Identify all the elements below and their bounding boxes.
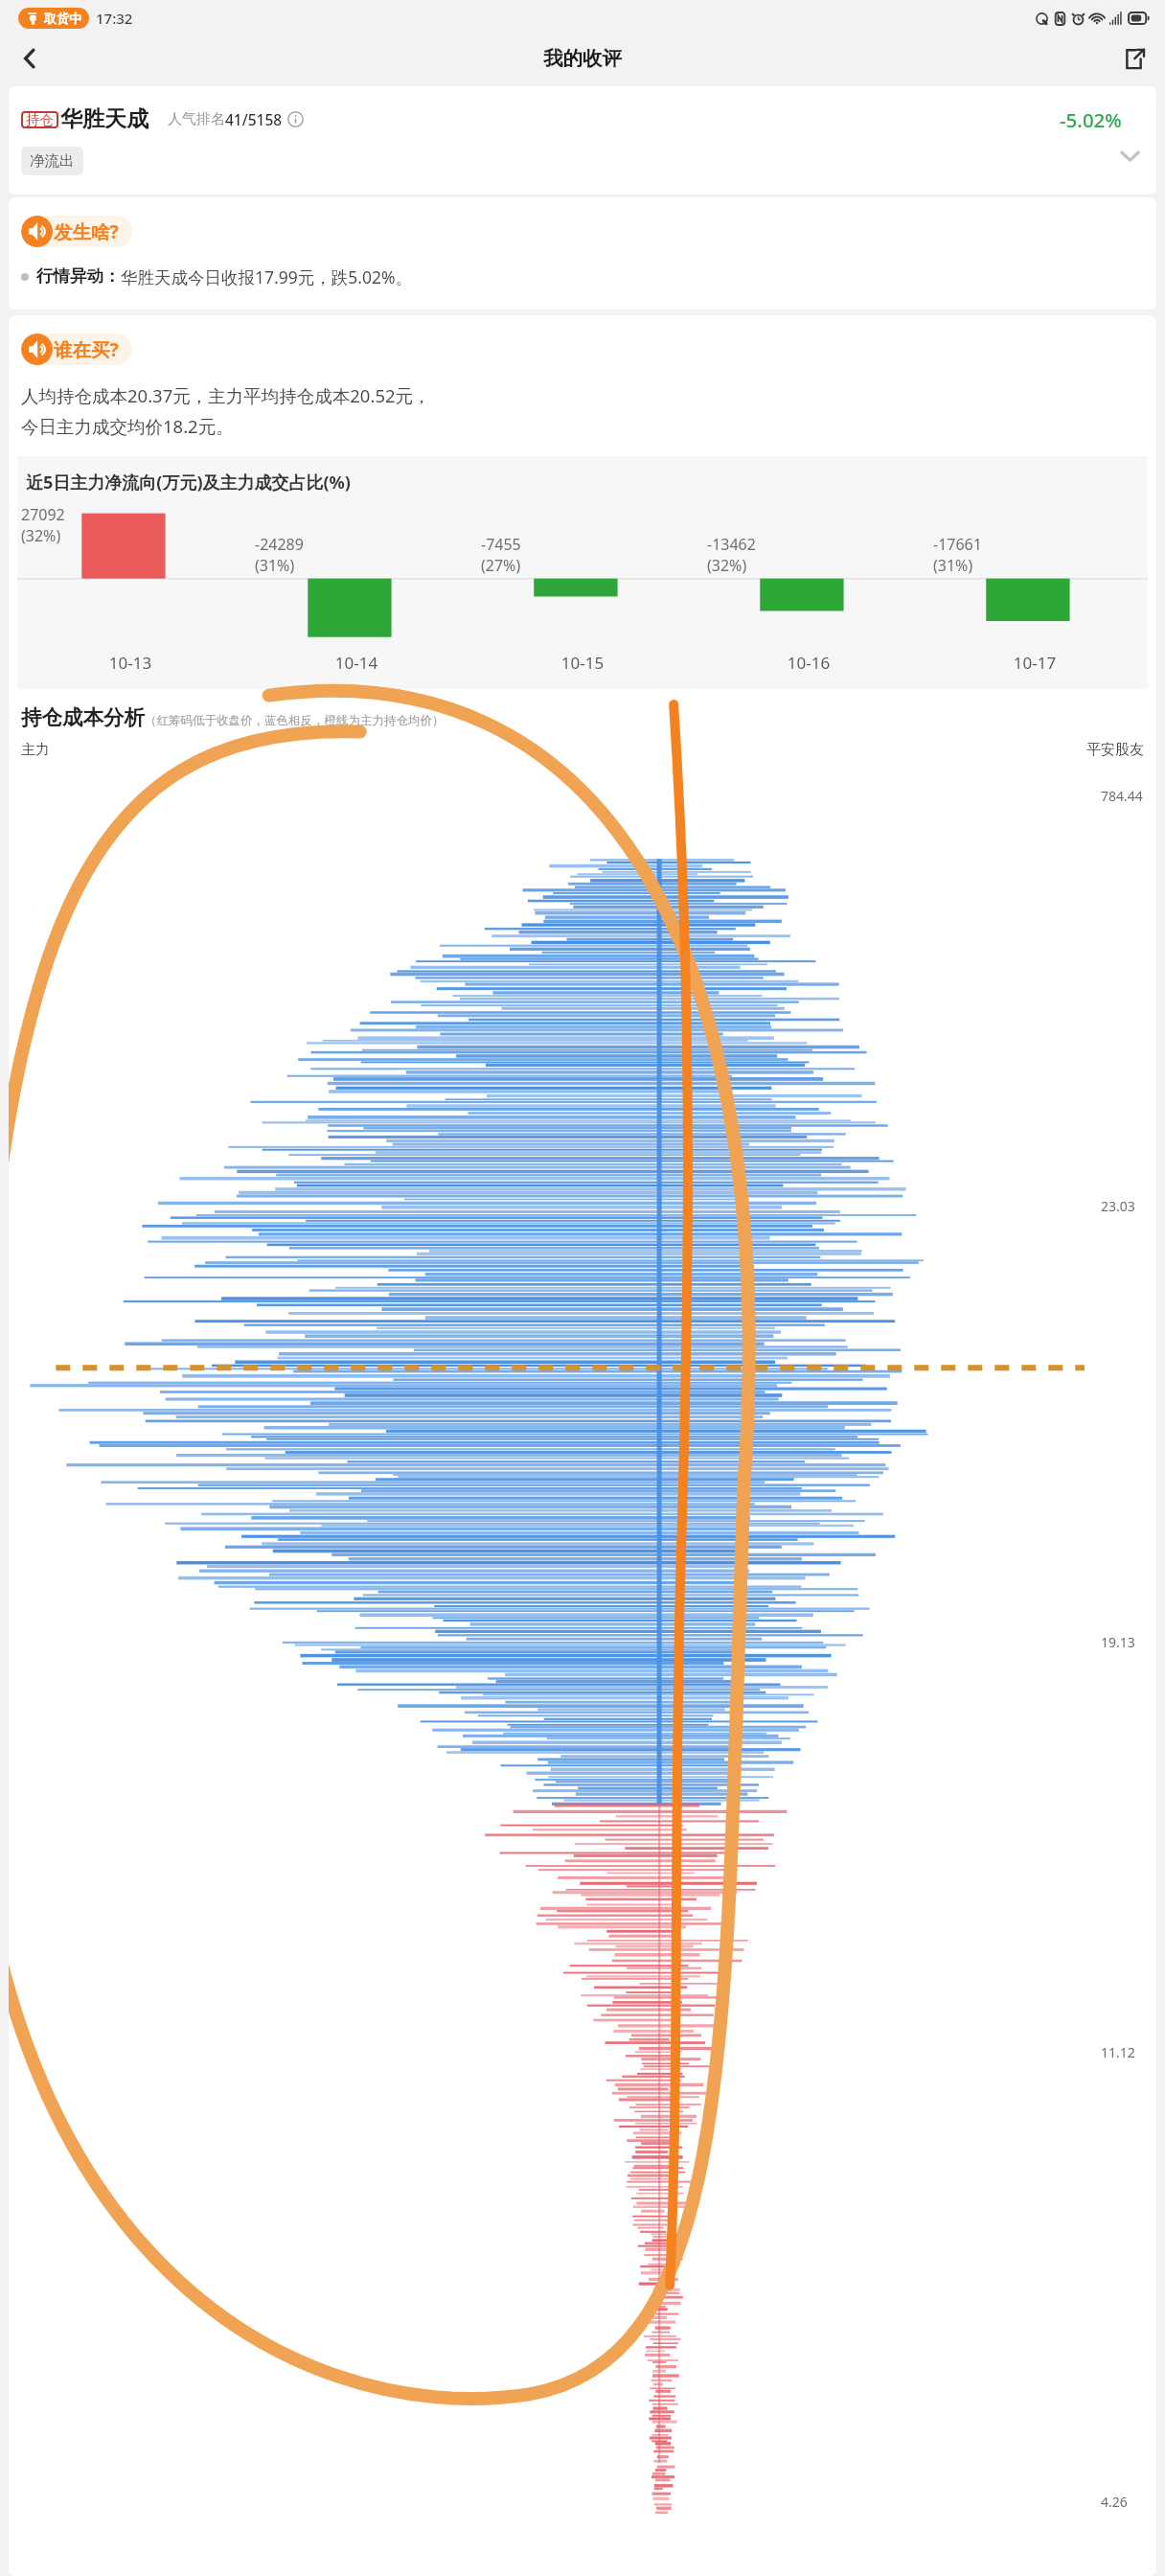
- staticText: 27092: [21, 504, 65, 525]
- staticText: 取货中: [44, 11, 81, 26]
- staticText: (31%): [255, 555, 295, 576]
- staticText: 41/5158: [225, 109, 283, 129]
- staticText: （红筹码低于收盘价，蓝色相反，橙线为主力持仓均价）: [145, 713, 445, 728]
- staticText: 持仓: [26, 111, 54, 128]
- staticText: (31%): [933, 555, 973, 576]
- staticText: 4.26: [1101, 2493, 1128, 2511]
- staticText: (27%): [481, 555, 521, 576]
- staticText: (32%): [21, 525, 61, 546]
- staticText: 17:32: [96, 9, 133, 28]
- staticText: 净流出: [30, 151, 75, 171]
- staticText: -13462: [707, 534, 756, 555]
- staticText: 人均持仓成本20.37元，主力平均持仓成本20.52元，: [21, 383, 431, 407]
- button[interactable]: 持仓: [9, 86, 1156, 195]
- button[interactable]: Expand: [1110, 136, 1149, 174]
- staticText: 19.13: [1101, 1633, 1135, 1651]
- staticText: -5.02%: [1060, 106, 1122, 133]
- staticText: 784.44: [1101, 787, 1143, 805]
- staticText: 10-14: [243, 652, 469, 674]
- staticText: 10-16: [696, 652, 922, 674]
- staticText: 发生啥?: [54, 218, 119, 244]
- button[interactable]: 净流出: [30, 151, 75, 171]
- staticText: 人气排名: [168, 110, 225, 128]
- button[interactable]: 取货中: [26, 11, 81, 26]
- staticText: 华胜天成: [60, 105, 148, 133]
- button[interactable]: Info: [287, 111, 304, 127]
- button[interactable]: 发生啥?: [21, 216, 119, 247]
- staticText: 23.03: [1101, 1197, 1135, 1215]
- button[interactable]: Share: [1111, 36, 1155, 80]
- staticText: 持仓成本分析: [21, 704, 145, 730]
- staticText: -17661: [933, 534, 982, 555]
- staticText: -7455: [481, 534, 521, 555]
- staticText: 主力: [21, 741, 50, 759]
- staticText: 谁在买?: [54, 336, 119, 362]
- staticText: 华胜天成今日收报17.99元，跌5.02%。: [121, 265, 412, 288]
- staticText: 今日主力成交均价18.2元。: [21, 414, 234, 438]
- staticText: 10-13: [17, 652, 243, 674]
- button[interactable]: Back: [8, 36, 52, 80]
- staticText: 10-17: [922, 652, 1148, 674]
- staticText: 我的收评: [543, 46, 622, 71]
- button[interactable]: 谁在买?: [21, 333, 119, 365]
- staticText: (32%): [707, 555, 747, 576]
- staticText: 平安股友: [1086, 741, 1144, 759]
- staticText: 10-15: [469, 652, 696, 674]
- staticText: 行情异动：: [36, 265, 121, 287]
- staticText: -24289: [255, 534, 304, 555]
- staticText: 11.12: [1101, 2043, 1135, 2061]
- staticText: 近5日主力净流向(万元)及主力成交占比(%): [26, 471, 351, 494]
